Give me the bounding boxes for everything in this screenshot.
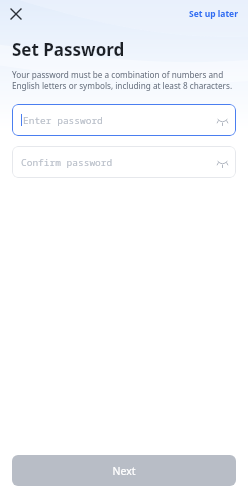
staticText: Enter password [23, 114, 103, 127]
button[interactable]: Enter password [12, 104, 236, 136]
staticText: Confirm password [21, 156, 113, 169]
button[interactable]: Show password [210, 150, 234, 174]
button[interactable]: Next [12, 455, 236, 486]
staticText: Set Password [12, 38, 125, 61]
button[interactable]: Close [6, 4, 26, 24]
button[interactable]: Set up later [179, 4, 248, 24]
staticText: Your password must be a combination of n… [12, 69, 236, 91]
button[interactable]: Confirm password [12, 146, 236, 178]
staticText: Next [112, 464, 136, 478]
staticText: Set up later [189, 8, 238, 20]
button[interactable]: Show password [210, 108, 234, 132]
